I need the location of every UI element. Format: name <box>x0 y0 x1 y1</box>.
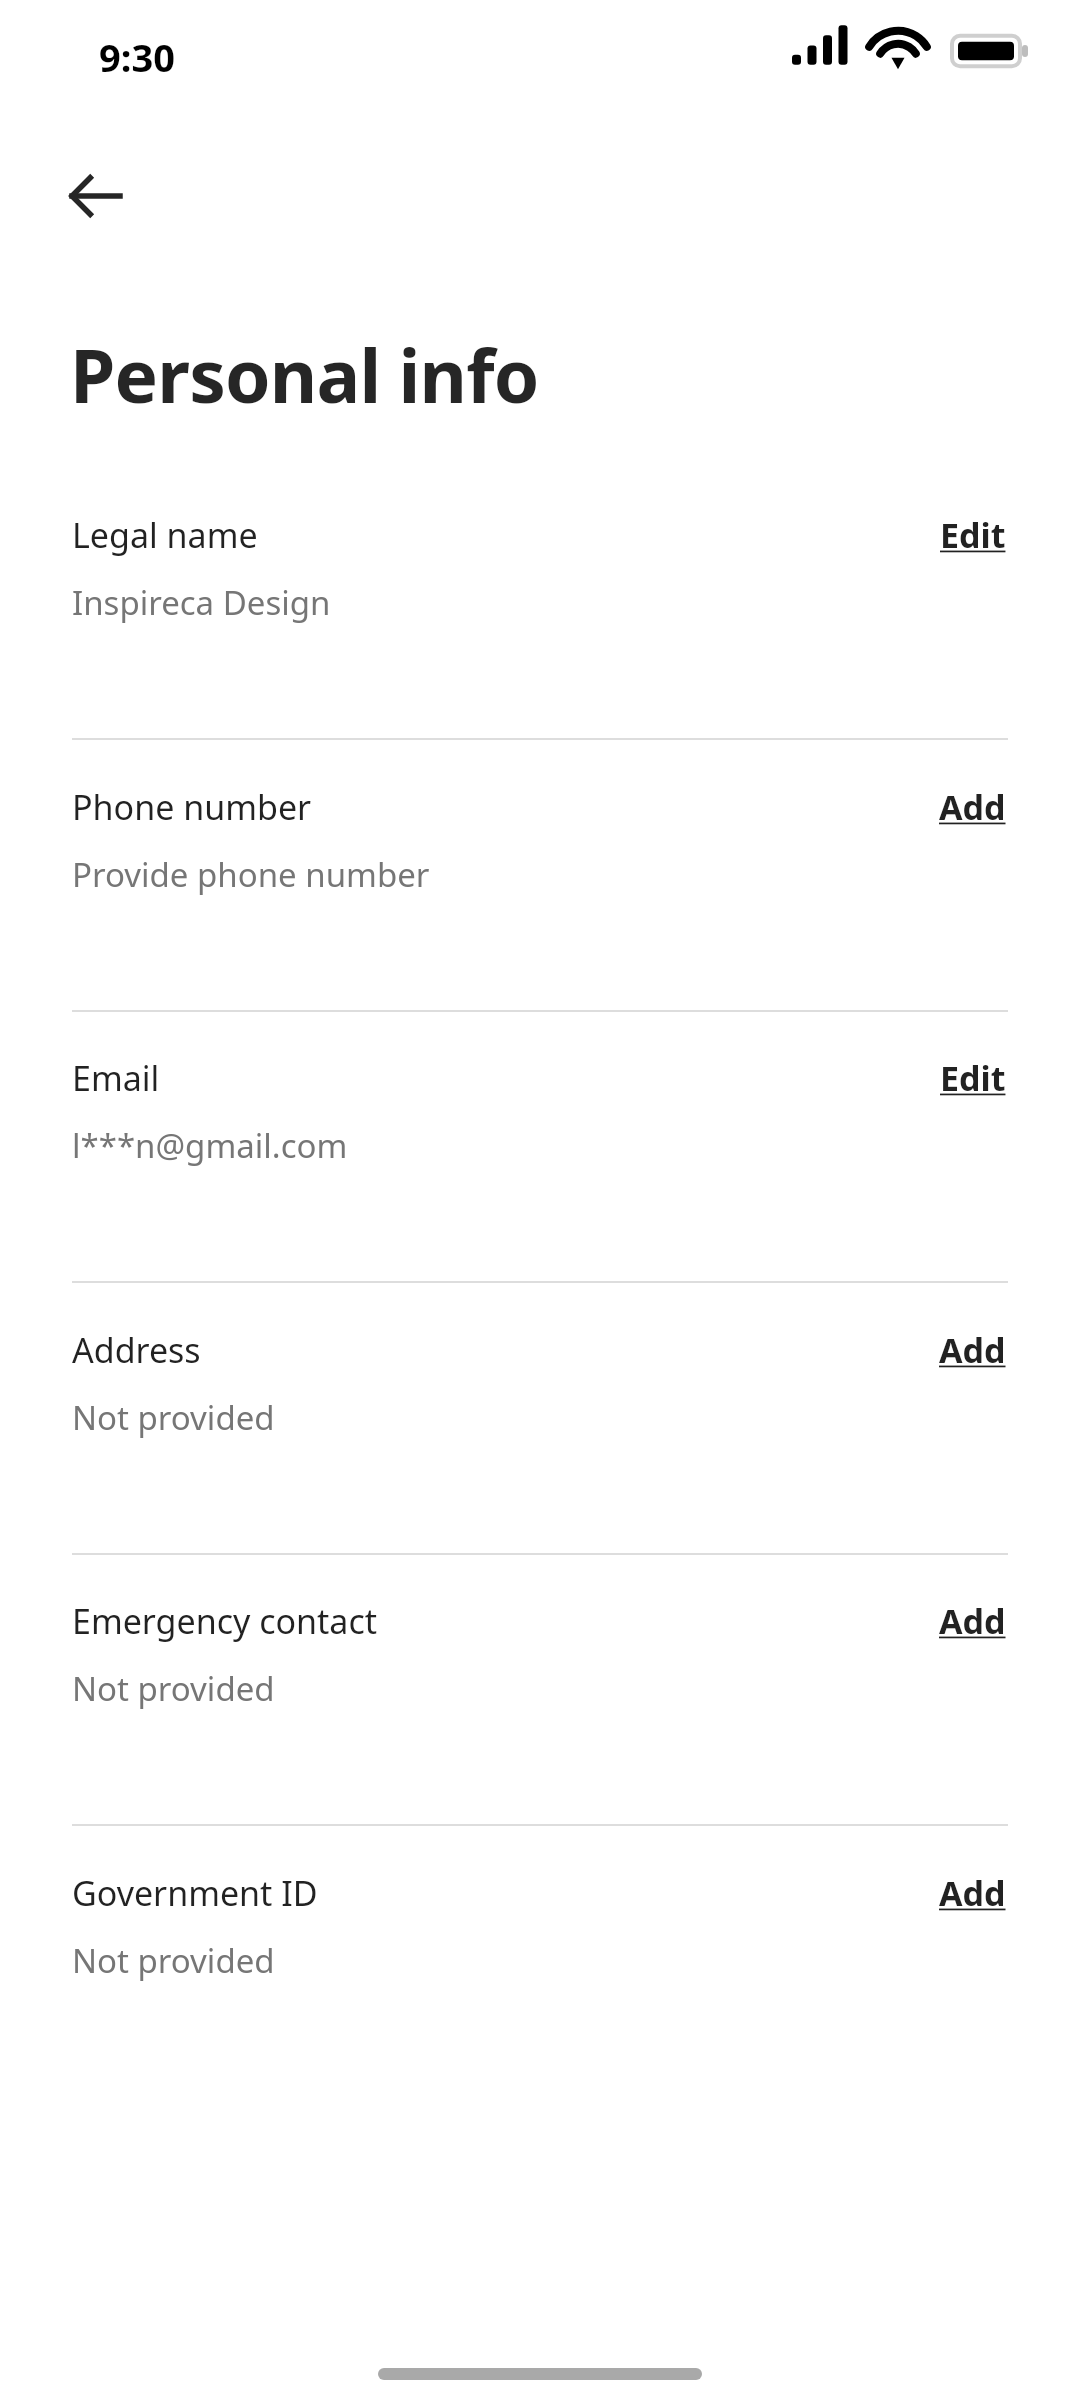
button[interactable]: Add <box>937 1594 1008 1648</box>
staticText: Provide phone number <box>72 852 430 897</box>
button[interactable]: Add <box>937 1323 1008 1377</box>
staticText: Edit <box>940 1055 1006 1101</box>
button[interactable]: Email <box>0 1055 1080 1205</box>
button[interactable]: Legal name <box>0 512 1080 662</box>
button[interactable]: Back <box>48 148 144 244</box>
staticText: Edit <box>940 512 1006 558</box>
staticText: Personal info <box>70 325 539 424</box>
staticText: Add <box>939 1598 1006 1644</box>
staticText: Legal name <box>72 512 258 558</box>
button[interactable]: Add <box>937 1866 1008 1920</box>
button[interactable]: Edit <box>938 508 1008 562</box>
staticText: Emergency contact <box>72 1598 378 1644</box>
staticText: Phone number <box>72 784 312 830</box>
staticText: Not provided <box>72 1666 275 1711</box>
button[interactable]: Add <box>937 780 1008 834</box>
button[interactable]: Address <box>0 1327 1080 1477</box>
staticText: 9:30 <box>99 31 175 83</box>
staticText: Government ID <box>72 1870 318 1916</box>
button[interactable]: Government ID <box>0 1870 1080 2020</box>
button[interactable]: Edit <box>938 1051 1008 1105</box>
staticText: Inspireca Design <box>72 580 331 625</box>
staticText: Email <box>72 1055 160 1101</box>
staticText: l***n@gmail.com <box>72 1123 348 1168</box>
staticText: Address <box>72 1327 201 1373</box>
button[interactable]: Phone number <box>0 784 1080 934</box>
staticText: Not provided <box>72 1395 275 1440</box>
staticText: Add <box>939 1870 1006 1916</box>
staticText: Not provided <box>72 1938 275 1983</box>
staticText: Add <box>939 784 1006 830</box>
staticText: Add <box>939 1327 1006 1373</box>
button[interactable]: Emergency contact <box>0 1598 1080 1748</box>
